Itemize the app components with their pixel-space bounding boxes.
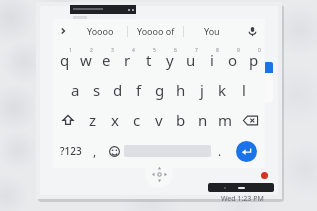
button[interactable]: Backspace <box>236 105 264 135</box>
button[interactable]: j <box>191 75 212 105</box>
staticText: Yoooo <box>87 25 114 37</box>
button[interactable]: s <box>86 75 107 105</box>
button[interactable]: x <box>104 105 126 135</box>
staticText: f <box>136 80 142 100</box>
button[interactable]: o <box>222 45 243 75</box>
button[interactable]: p <box>243 45 264 75</box>
staticText: d <box>113 80 123 100</box>
staticText: n <box>198 110 208 130</box>
staticText: s <box>93 80 101 100</box>
staticText: a <box>71 80 80 100</box>
button[interactable]: t <box>138 45 159 75</box>
button[interactable]: g <box>149 75 170 105</box>
staticText: You <box>204 25 220 37</box>
button[interactable]: c <box>126 105 148 135</box>
staticText: w <box>80 50 92 70</box>
button[interactable]: k <box>212 75 233 105</box>
staticText: 0 <box>258 47 261 54</box>
staticText: Wed 1:23 PM <box>221 194 264 204</box>
staticText: b <box>176 110 186 130</box>
button[interactable]: Shift <box>54 105 82 135</box>
button[interactable]: i <box>201 45 222 75</box>
staticText: z <box>89 110 97 130</box>
staticText: Yoooo of <box>137 25 175 37</box>
button[interactable]: h <box>170 75 191 105</box>
staticText: 3 <box>111 47 114 54</box>
staticText: l <box>242 80 246 100</box>
staticText: k <box>218 80 227 100</box>
staticText: 5 <box>153 47 156 54</box>
staticText: i <box>210 50 214 70</box>
staticText: t <box>146 50 152 70</box>
button[interactable]: f <box>128 75 149 105</box>
button[interactable]: v <box>148 105 170 135</box>
button[interactable]: Emoji <box>104 135 124 167</box>
staticText: v <box>155 110 163 130</box>
button[interactable]: w <box>75 45 96 75</box>
staticText: g <box>155 80 165 100</box>
button[interactable]: a <box>64 75 86 105</box>
staticText: p <box>249 50 259 70</box>
staticText: q <box>60 50 70 70</box>
button[interactable]: z <box>82 105 104 135</box>
staticText: 7 <box>195 47 198 54</box>
button[interactable]: q <box>54 45 75 75</box>
button[interactable]: Voice input <box>239 19 265 43</box>
button[interactable]: r <box>117 45 138 75</box>
staticText: o <box>228 50 238 70</box>
staticText: . <box>218 143 222 159</box>
staticText: 8 <box>216 47 219 54</box>
staticText: y <box>166 50 174 70</box>
staticText: u <box>186 50 196 70</box>
staticText: h <box>176 80 186 100</box>
button[interactable]: l <box>233 75 254 105</box>
staticText: ?123 <box>60 144 82 158</box>
button[interactable]: Yoooo <box>73 19 127 43</box>
staticText: 2 <box>90 47 93 54</box>
button[interactable]: Enter <box>236 141 257 162</box>
staticText: c <box>133 110 141 130</box>
button[interactable]: . <box>211 135 229 167</box>
staticText: 4 <box>132 47 135 54</box>
button[interactable]: b <box>170 105 192 135</box>
button[interactable]: Move keyboard <box>145 160 173 188</box>
button[interactable]: n <box>192 105 214 135</box>
staticText: 9 <box>237 47 240 54</box>
button[interactable]: Yoooo of <box>128 19 183 43</box>
staticText: , <box>93 143 97 159</box>
button[interactable]: u <box>180 45 201 75</box>
button[interactable]: d <box>107 75 128 105</box>
button[interactable]: y <box>159 45 180 75</box>
staticText: r <box>124 50 131 70</box>
staticText: m <box>218 110 233 130</box>
button[interactable]: ?123 <box>55 135 86 167</box>
staticText: 6 <box>174 47 177 54</box>
staticText: 1 <box>69 47 72 54</box>
staticText: e <box>102 50 111 70</box>
button[interactable]: You <box>184 19 239 43</box>
staticText: j <box>200 80 204 100</box>
button[interactable]: m <box>214 105 236 135</box>
staticText: x <box>111 110 119 130</box>
button[interactable]: e <box>96 45 117 75</box>
button[interactable]: Expand suggestions <box>53 19 73 43</box>
button[interactable]: , <box>86 135 104 167</box>
